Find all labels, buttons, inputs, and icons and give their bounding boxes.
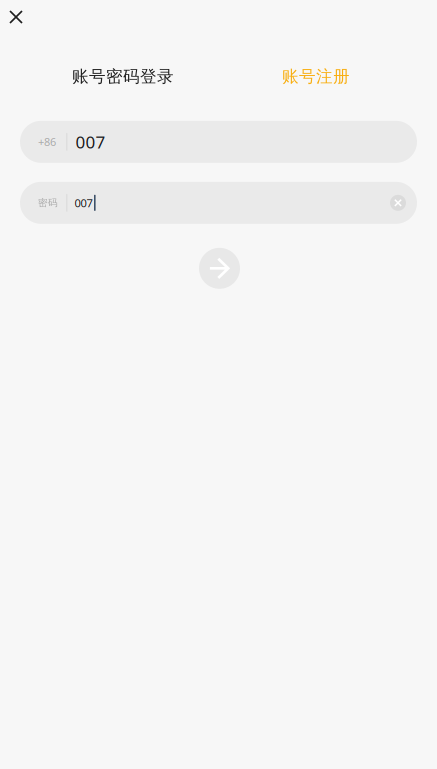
staticText: 密码 (38, 197, 58, 209)
staticText: 账号密码登录 (72, 66, 174, 87)
button[interactable]: Clear text (390, 195, 406, 211)
staticText: 007 (74, 195, 92, 210)
staticText: 账号注册 (282, 66, 350, 87)
button[interactable]: Continue (199, 248, 240, 289)
staticText: 007 (75, 130, 105, 153)
button[interactable]: 账号注册 (282, 66, 350, 87)
button[interactable]: 账号密码登录 (72, 66, 174, 87)
staticText: +86 (38, 134, 56, 149)
button[interactable]: Phone number, +86, 007 (20, 121, 417, 163)
button[interactable]: Password, 007 (20, 194, 390, 212)
button[interactable]: Close (0, 0, 32, 34)
